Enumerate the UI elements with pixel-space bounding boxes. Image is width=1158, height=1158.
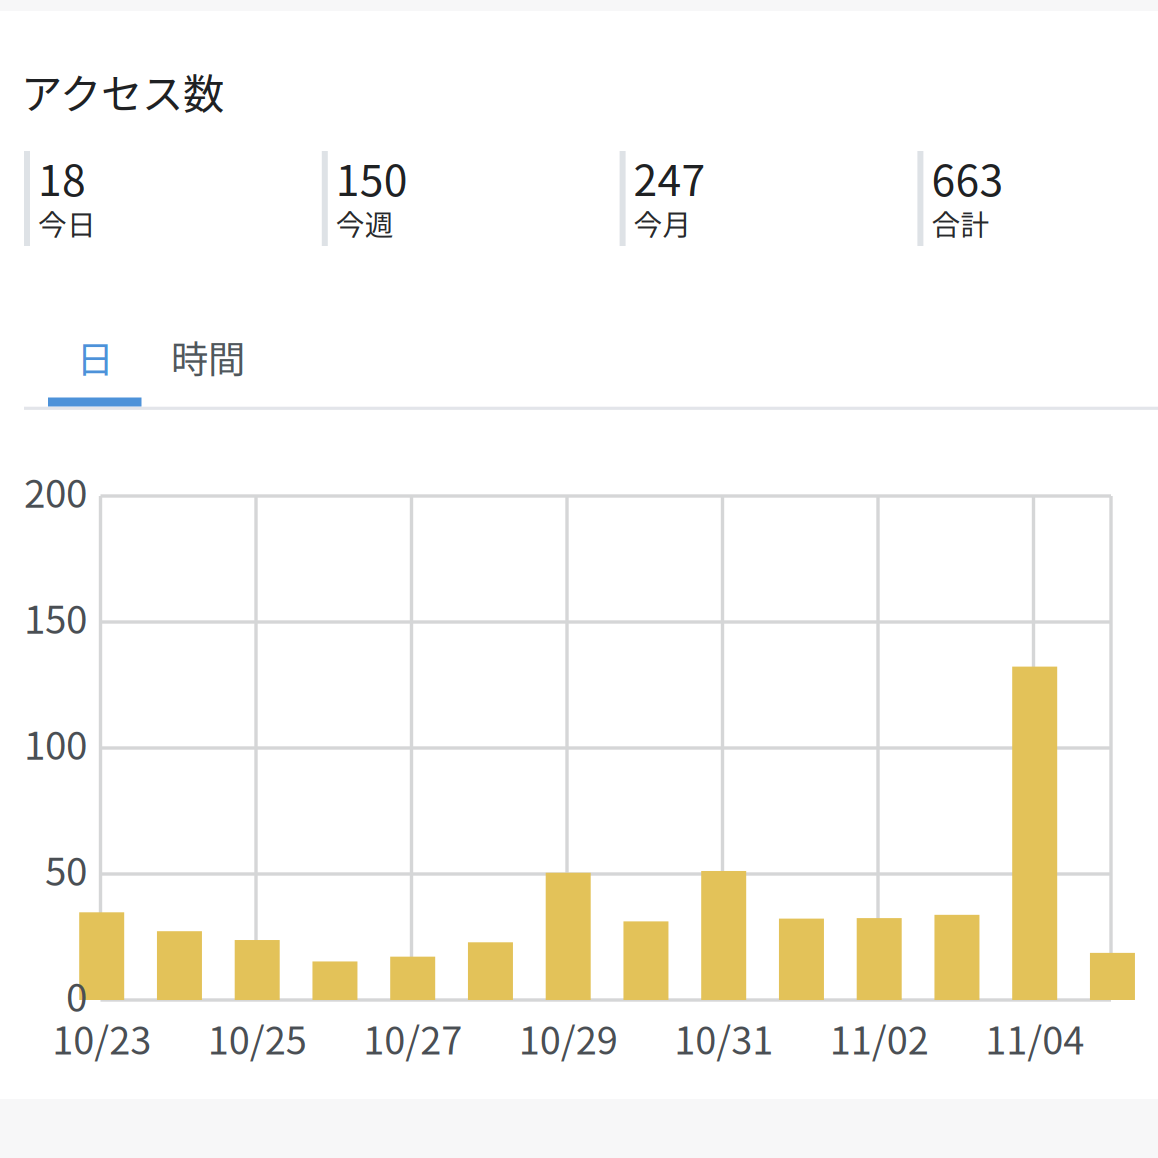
staticText: 50 [45, 841, 87, 897]
staticText: 11/04 [985, 1010, 1084, 1065]
staticText: 時間 [171, 330, 245, 384]
staticText: 150 [24, 589, 87, 645]
staticText: 0 [66, 967, 87, 1023]
staticText: 日 [76, 330, 113, 384]
staticText: 663 [931, 147, 1003, 208]
staticText: 150 [336, 147, 408, 208]
staticText: 今週 [336, 202, 394, 244]
staticText: 10/25 [208, 1010, 307, 1065]
staticText: 10/23 [52, 1010, 151, 1065]
staticText: 100 [24, 715, 87, 771]
button[interactable]: 日 [48, 319, 142, 395]
staticText: 今月 [634, 202, 692, 244]
staticText: 今日 [38, 202, 96, 244]
staticText: アクセス数 [21, 61, 224, 121]
staticText: 10/29 [519, 1010, 618, 1065]
button[interactable]: 時間 [153, 319, 263, 395]
staticText: 10/31 [674, 1010, 773, 1065]
staticText: 10/27 [363, 1010, 462, 1065]
staticText: 200 [24, 463, 87, 519]
staticText: 18 [38, 147, 86, 208]
staticText: 11/02 [830, 1010, 929, 1065]
staticText: 合計 [931, 202, 989, 244]
staticText: 247 [634, 147, 706, 208]
